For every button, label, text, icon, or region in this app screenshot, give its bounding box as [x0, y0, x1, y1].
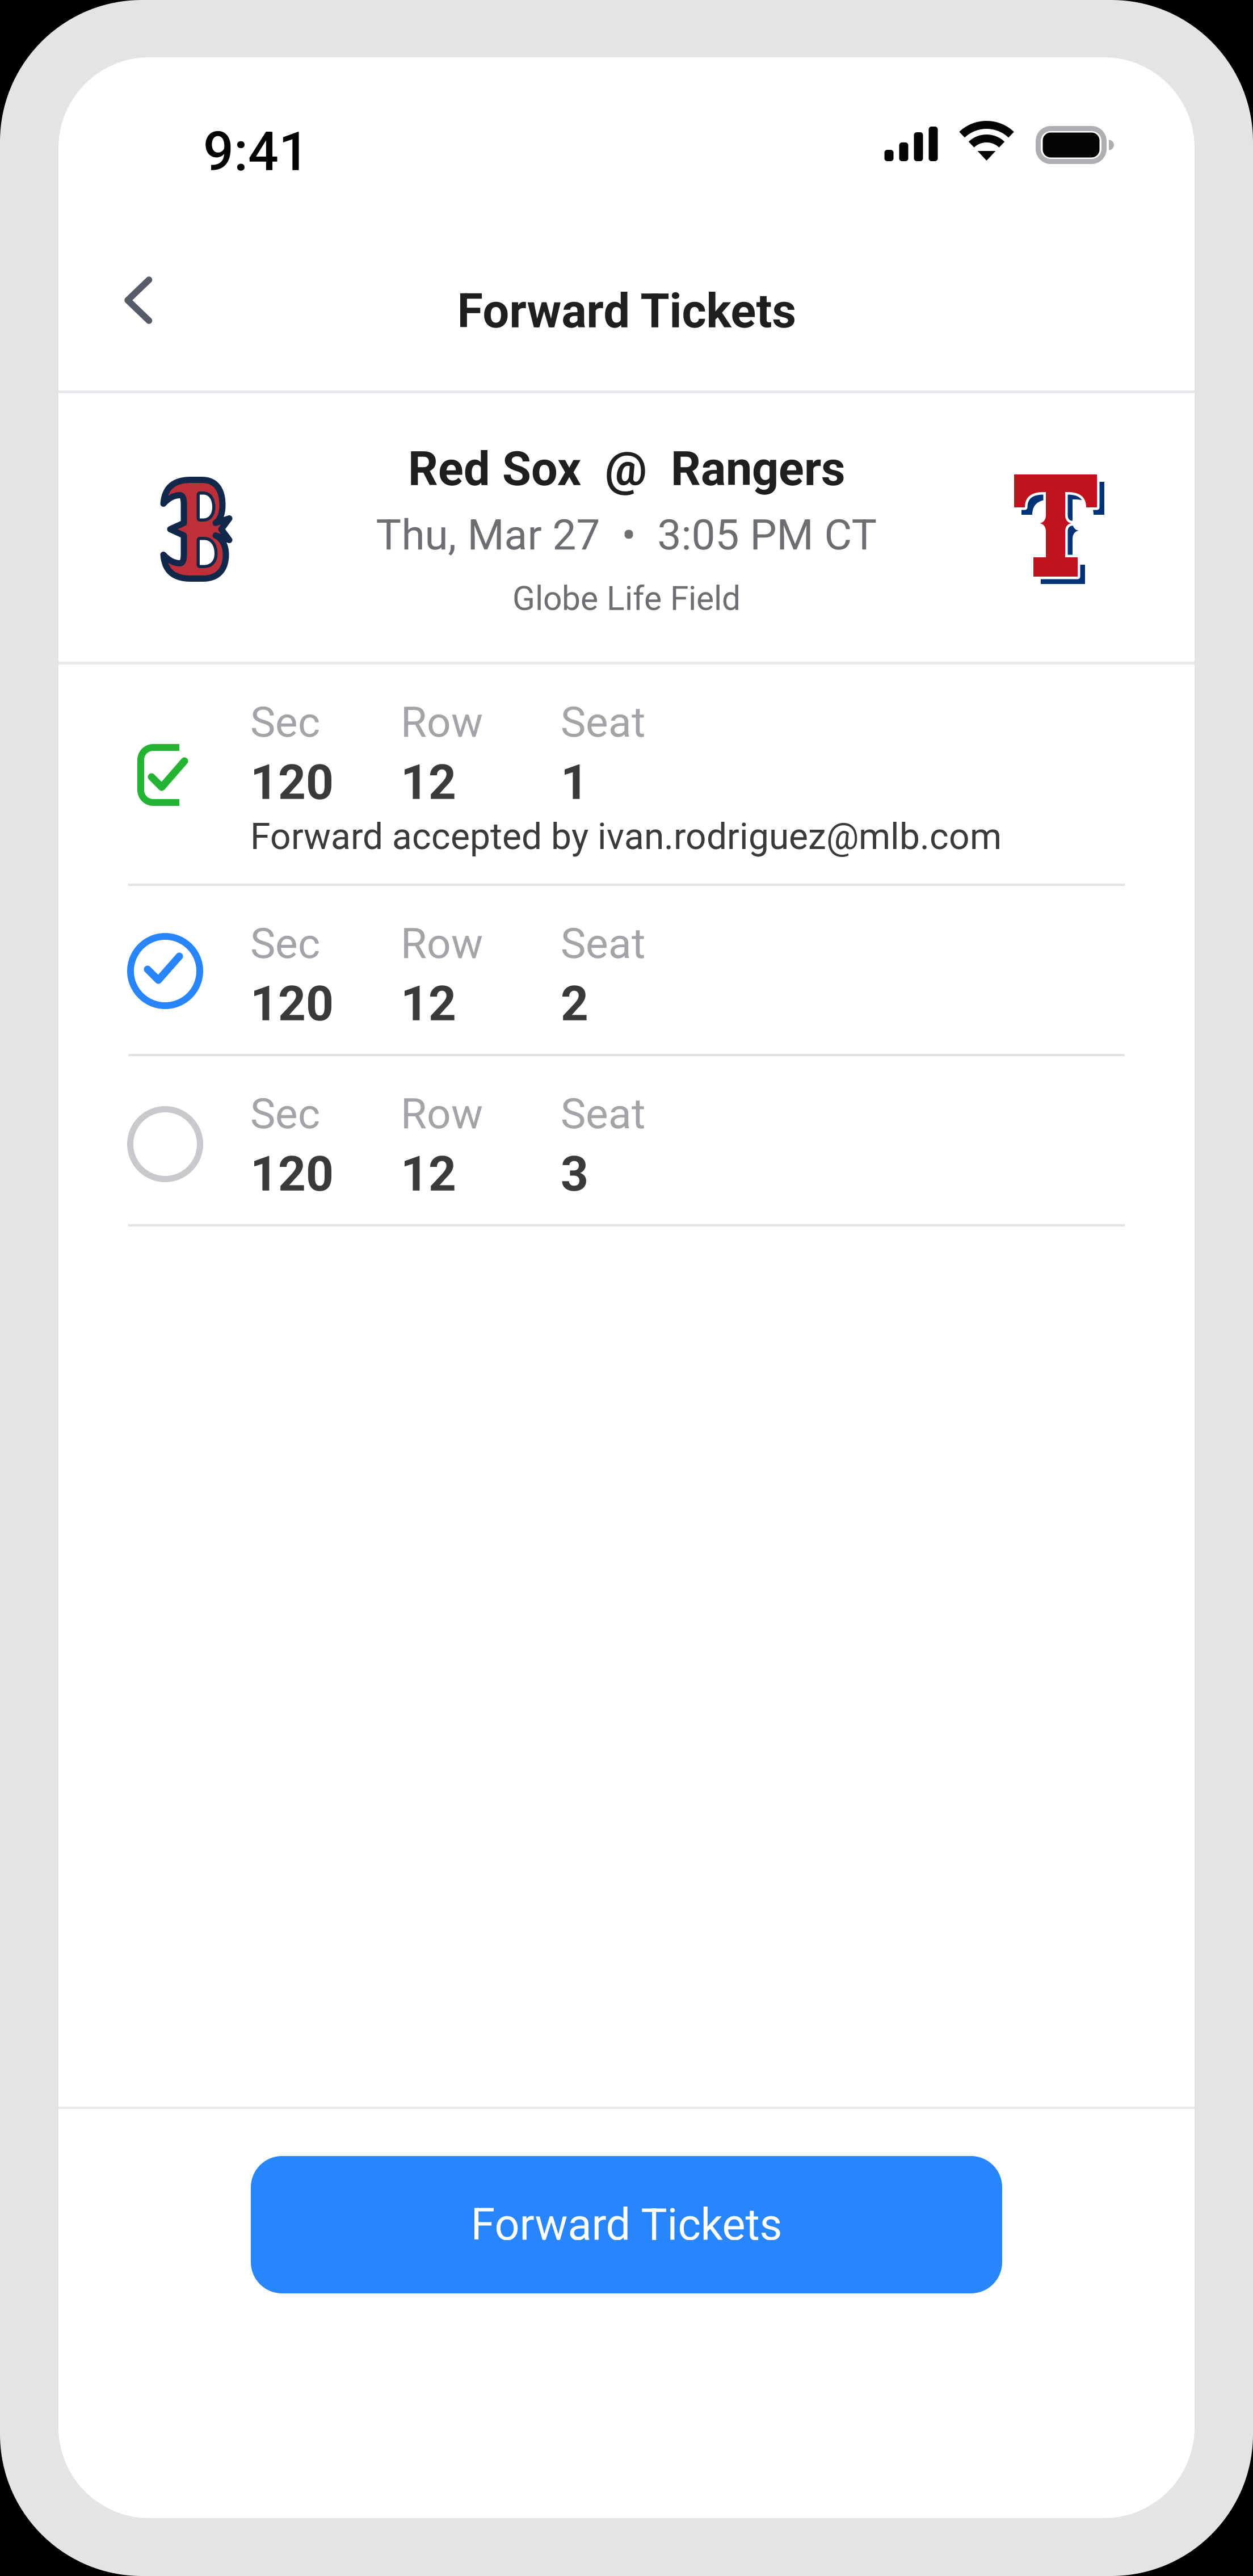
staticText: Row	[401, 697, 483, 747]
staticText: Forward Tickets	[471, 2199, 782, 2250]
staticText: Red Sox @ Rangers	[408, 442, 845, 497]
staticText: 9:41	[203, 120, 309, 183]
staticText: Row	[401, 919, 483, 968]
staticText: 12	[401, 754, 456, 811]
staticText: Forward accepted by ivan.rodriguez@mlb.c…	[250, 815, 1002, 858]
staticText: Seat	[561, 919, 645, 968]
staticText: 12	[401, 1146, 456, 1202]
staticText: Globe Life Field	[512, 579, 741, 618]
staticText: 120	[250, 754, 334, 811]
button[interactable]: Sec	[58, 886, 1195, 1054]
staticText: 120	[250, 1146, 334, 1202]
staticText: Row	[401, 1089, 483, 1139]
staticText: 12	[401, 975, 456, 1032]
button[interactable]: Sec	[58, 1056, 1195, 1224]
staticText: Seat	[561, 1089, 645, 1139]
staticText: Seat	[561, 697, 645, 747]
button[interactable]: Forward Tickets	[251, 2156, 1002, 2293]
button[interactable]: Back	[91, 260, 185, 356]
staticText: 3	[561, 1146, 588, 1202]
staticText: Sec	[250, 697, 320, 747]
staticText: Thu, Mar 27 • 3:05 PM CT	[376, 510, 877, 560]
staticText: Forward Tickets	[457, 284, 796, 339]
staticText: 120	[250, 975, 334, 1032]
staticText: 1	[561, 754, 588, 811]
staticText: 2	[561, 975, 588, 1032]
staticText: Sec	[250, 1089, 320, 1139]
button[interactable]: Sec	[58, 665, 1195, 884]
staticText: Sec	[250, 919, 320, 968]
